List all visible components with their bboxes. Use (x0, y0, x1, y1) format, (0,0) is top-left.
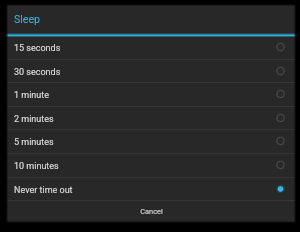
button[interactable]: Never time out (6, 177, 296, 201)
staticText: Never time out (14, 185, 73, 196)
staticText: 5 minutes (14, 137, 54, 148)
staticText: 30 seconds (14, 67, 61, 78)
button[interactable]: 15 seconds (6, 35, 296, 59)
button[interactable]: 30 seconds (6, 59, 296, 83)
staticText: Sleep (14, 13, 41, 25)
button[interactable]: 2 minutes (6, 106, 296, 130)
staticText: 2 minutes (14, 114, 54, 125)
button[interactable]: 10 minutes (6, 153, 296, 177)
button[interactable]: 1 minute (6, 82, 296, 106)
staticText: 1 minute (14, 90, 50, 101)
button[interactable]: Cancel (6, 200, 296, 223)
staticText: Cancel (140, 207, 163, 216)
button[interactable]: 5 minutes (6, 129, 296, 153)
staticText: 10 minutes (14, 161, 59, 172)
staticText: 15 seconds (14, 43, 61, 54)
